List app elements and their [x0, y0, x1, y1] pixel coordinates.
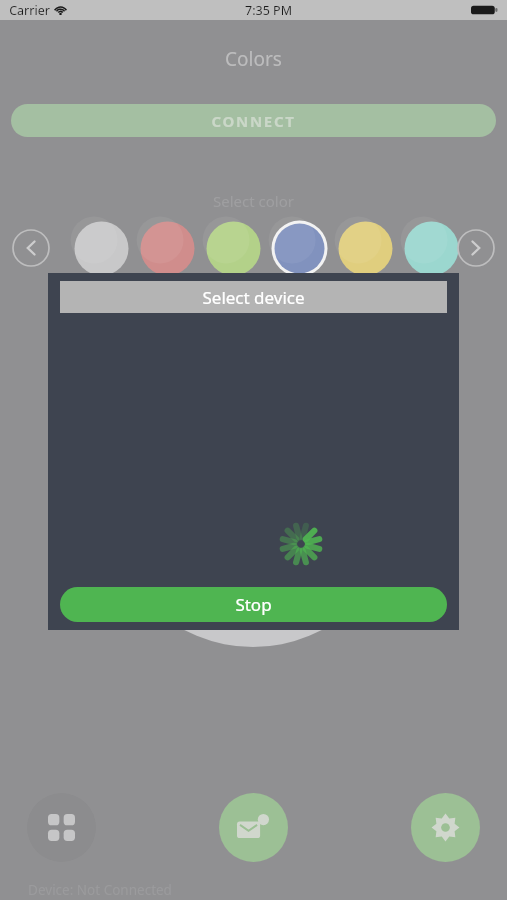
button[interactable]: Select device [60, 281, 447, 313]
button[interactable]: Settings [411, 793, 480, 862]
staticText: Device: Not Connected [28, 881, 172, 899]
button[interactable]: CONNECT [11, 104, 496, 137]
staticText: Select device [202, 286, 305, 309]
staticText: Select color [213, 191, 294, 211]
staticText: 7:35 PM [245, 2, 292, 19]
staticText: Carrier [9, 2, 50, 19]
button[interactable]: Messages [219, 793, 288, 862]
button[interactable]: Colour 3 [205, 220, 262, 277]
button[interactable]: Colour 4 [271, 220, 328, 277]
button[interactable]: Colour 1 [73, 220, 130, 277]
button[interactable]: Stop [60, 587, 447, 622]
staticText: Stop [235, 593, 272, 616]
button[interactable]: Colour 5 [337, 220, 394, 277]
button[interactable]: Grid [27, 793, 96, 862]
button[interactable]: Previous colours [12, 229, 50, 267]
staticText: Colors [225, 46, 282, 72]
button[interactable]: Colour 6 [403, 220, 460, 277]
staticText: CONNECT [211, 111, 296, 131]
button[interactable]: Next colours [457, 229, 495, 267]
button[interactable]: Colour 2 [139, 220, 196, 277]
